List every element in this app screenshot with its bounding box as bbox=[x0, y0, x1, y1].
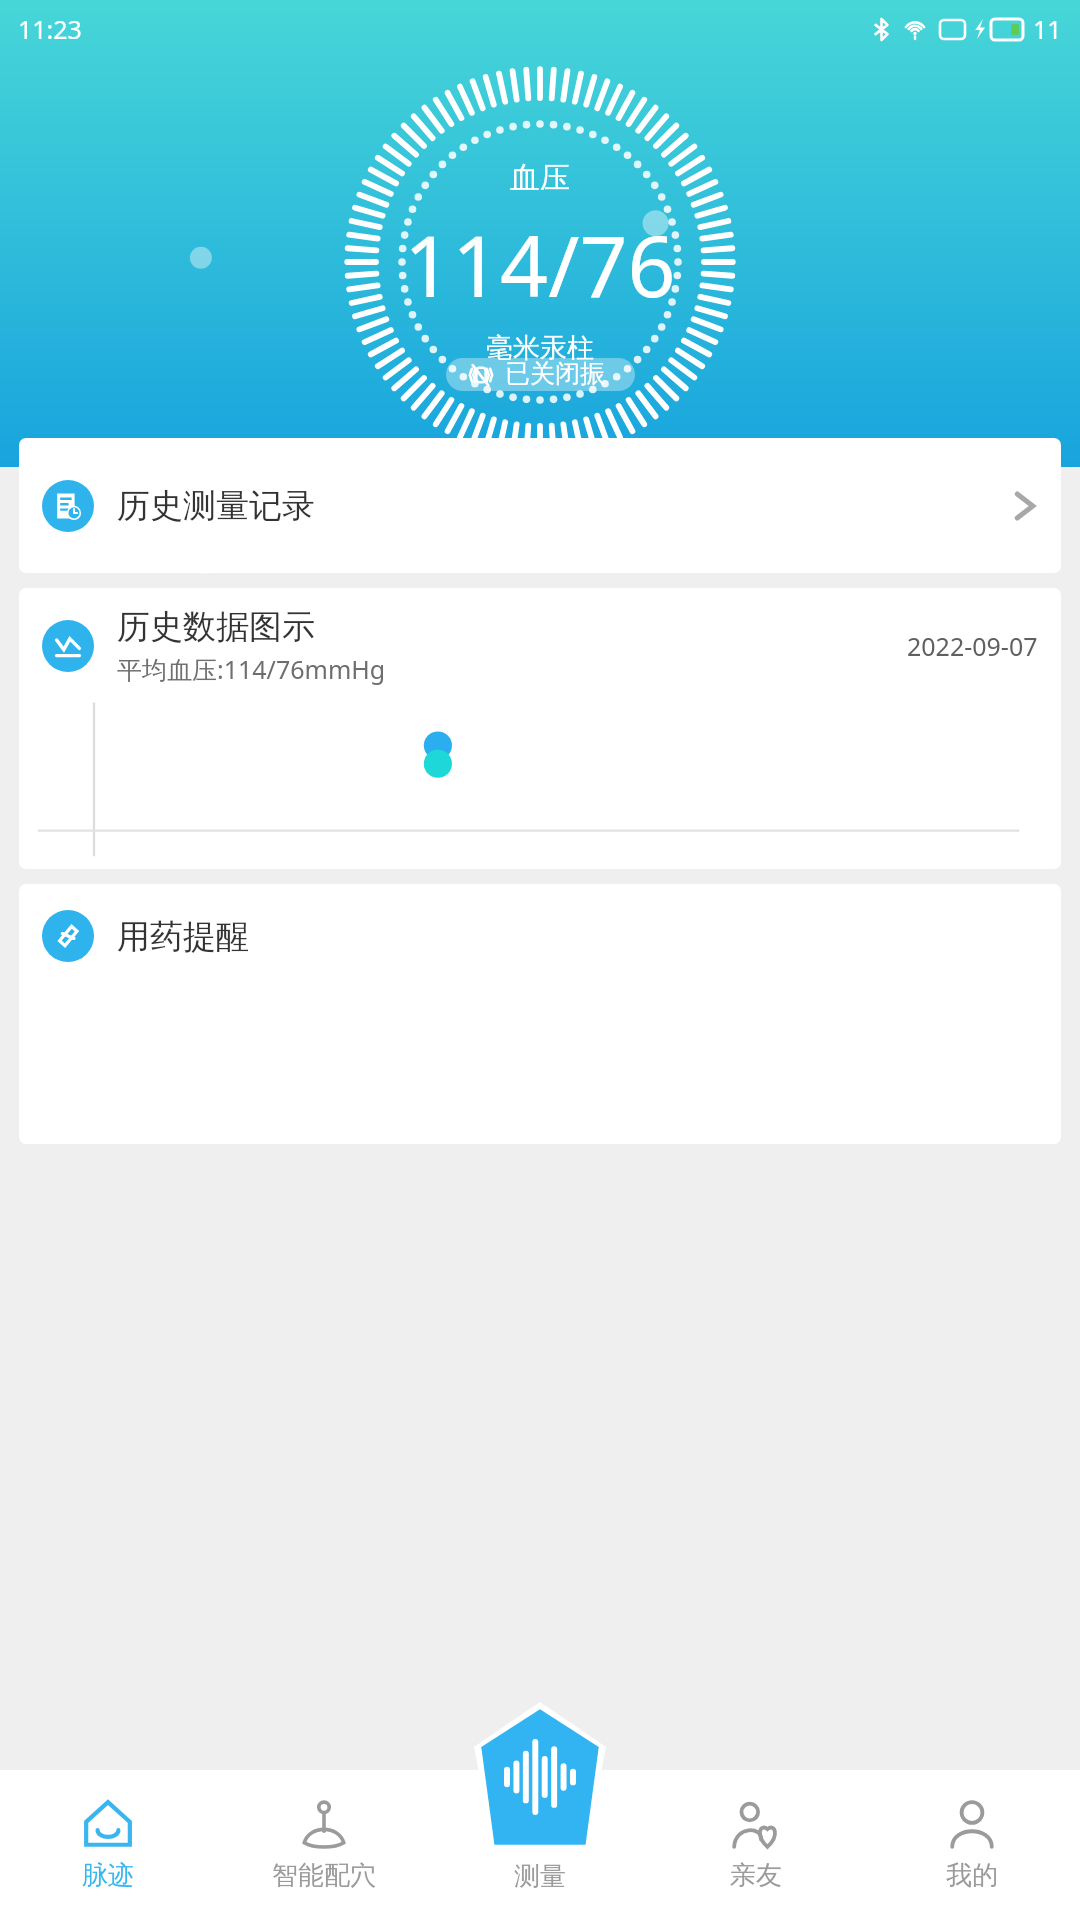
button[interactable]: 亲友 bbox=[648, 1770, 864, 1920]
staticText: 11:23 bbox=[18, 12, 82, 46]
other: Open bbox=[1012, 486, 1038, 526]
button[interactable]: 测量 bbox=[474, 1702, 606, 1852]
staticText: 智能配穴 bbox=[272, 1859, 376, 1892]
staticText: 114/76 bbox=[404, 207, 676, 321]
staticText: 平均血压:114/76mmHg bbox=[117, 652, 386, 686]
staticText: 2022-09-07 bbox=[907, 629, 1038, 663]
staticText: 已关闭振动 bbox=[505, 358, 613, 391]
staticText: 毫米汞柱 bbox=[486, 331, 594, 365]
button[interactable]: 脉迹 bbox=[0, 1770, 216, 1920]
button[interactable]: 智能配穴 bbox=[216, 1770, 432, 1920]
staticText: 亲友 bbox=[730, 1859, 782, 1892]
button[interactable]: 用药提醒 bbox=[19, 884, 1061, 1144]
button[interactable]: 历史测量记录 bbox=[19, 438, 1061, 573]
button[interactable]: 历史数据图示 bbox=[19, 588, 1061, 869]
button[interactable]: 我的 bbox=[864, 1770, 1080, 1920]
button[interactable]: 已关闭振动 bbox=[446, 358, 635, 391]
staticText: 历史测量记录 bbox=[117, 485, 315, 527]
staticText: 我的 bbox=[946, 1859, 998, 1892]
staticText: 11 bbox=[1033, 12, 1062, 46]
staticText: 脉迹 bbox=[82, 1859, 134, 1892]
staticText: 历史数据图示 bbox=[117, 606, 315, 648]
staticText: 血压 bbox=[510, 159, 570, 197]
staticText: 用药提醒 bbox=[117, 916, 249, 958]
staticText: 测量 bbox=[514, 1860, 566, 1893]
